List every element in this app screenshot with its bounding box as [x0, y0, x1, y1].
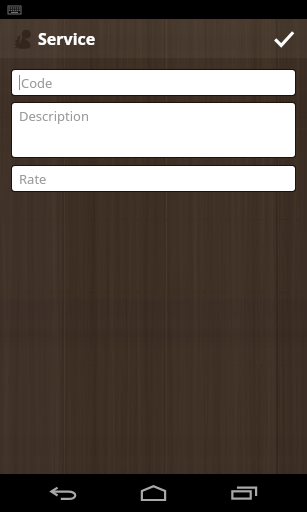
staticText: Service	[38, 28, 96, 50]
button[interactable]: Code	[12, 70, 295, 95]
staticText: Description	[19, 107, 89, 125]
button[interactable]: Home	[130, 474, 176, 512]
button[interactable]: Description	[12, 103, 295, 157]
button[interactable]: Rate	[12, 166, 295, 191]
button[interactable]: Done	[262, 19, 304, 58]
staticText: Code	[21, 74, 53, 92]
button[interactable]: Recents	[221, 474, 267, 512]
staticText: Rate	[19, 170, 47, 188]
button[interactable]: Back	[40, 474, 86, 512]
button[interactable]: Service	[0, 19, 102, 58]
